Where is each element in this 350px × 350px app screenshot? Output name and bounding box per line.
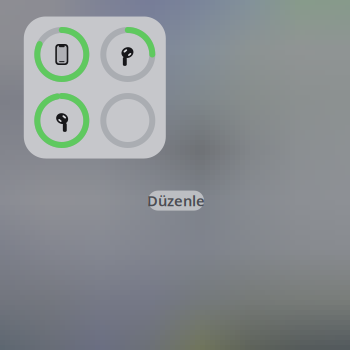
button[interactable]: [24, 16, 166, 158]
staticText: Düzenle: [147, 191, 205, 210]
button[interactable]: Düzenle: [148, 191, 204, 211]
